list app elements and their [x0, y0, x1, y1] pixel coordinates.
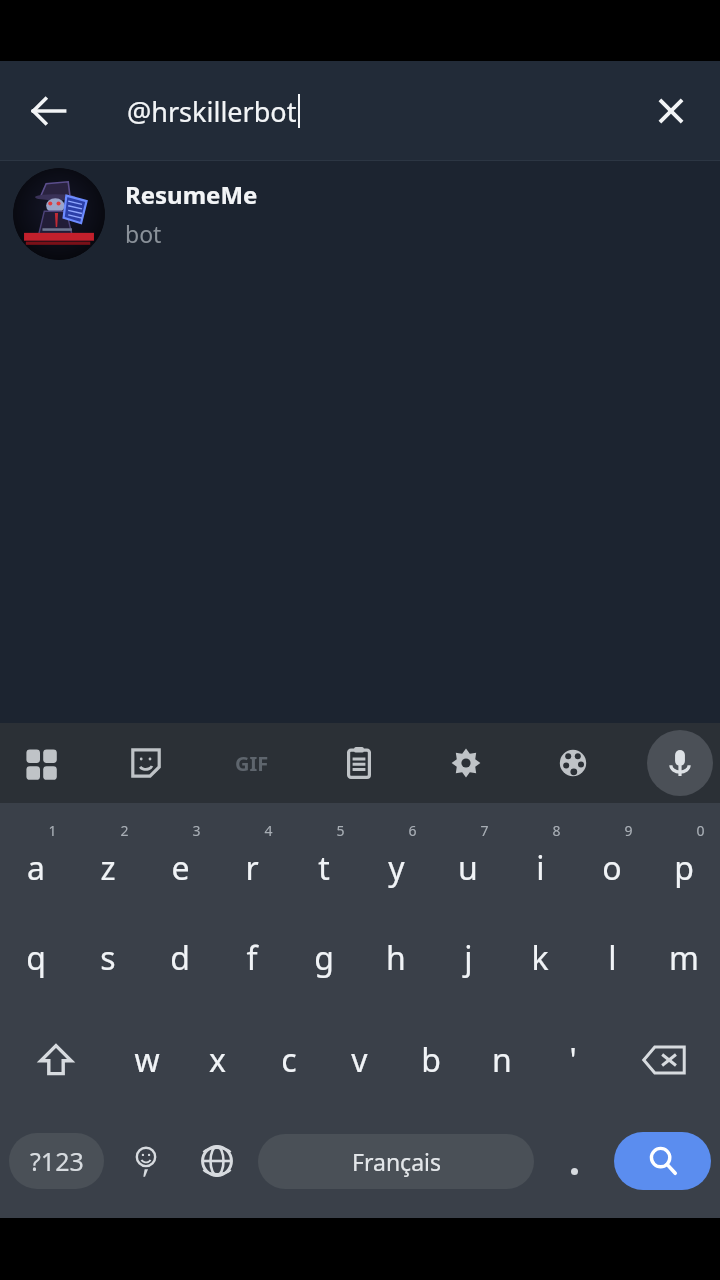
staticText: 0: [696, 821, 705, 840]
staticText: bot: [125, 218, 162, 249]
button[interactable]: Stickers: [113, 730, 179, 796]
button[interactable]: ?123: [9, 1133, 104, 1189]
staticText: z: [100, 846, 116, 890]
staticText: t: [318, 846, 330, 890]
button[interactable]: 9: [576, 808, 648, 908]
button[interactable]: @hrskillerbot: [127, 76, 610, 146]
staticText: 5: [336, 821, 345, 840]
staticText: m: [669, 936, 699, 980]
button[interactable]: q: [0, 908, 72, 1008]
button[interactable]: f: [216, 908, 288, 1008]
button[interactable]: l: [576, 908, 648, 1008]
button[interactable]: 3: [144, 808, 216, 908]
staticText: ResumeMe: [125, 178, 258, 211]
staticText: y: [388, 846, 405, 890]
button[interactable]: 8: [504, 808, 576, 908]
staticText: q: [26, 936, 46, 980]
staticText: ?123: [30, 1144, 84, 1178]
button[interactable]: Settings: [433, 730, 499, 796]
button[interactable]: Français: [258, 1134, 534, 1189]
button[interactable]: Voice input: [647, 730, 713, 796]
staticText: s: [100, 936, 116, 980]
staticText: b: [421, 1038, 441, 1082]
staticText: 6: [408, 821, 417, 840]
button[interactable]: 1: [0, 808, 72, 908]
staticText: 1: [48, 821, 57, 840]
button[interactable]: ': [537, 1010, 608, 1110]
staticText: i: [536, 846, 545, 890]
button[interactable]: s: [72, 908, 144, 1008]
staticText: d: [170, 936, 190, 980]
staticText: r: [245, 846, 259, 890]
staticText: 3: [192, 821, 201, 840]
staticText: n: [492, 1038, 512, 1082]
staticText: f: [246, 936, 258, 980]
staticText: GIF: [235, 750, 269, 777]
staticText: a: [27, 846, 45, 890]
button[interactable]: j: [432, 908, 504, 1008]
button[interactable]: d: [144, 908, 216, 1008]
button[interactable]: b: [395, 1010, 466, 1110]
staticText: Français: [352, 1146, 441, 1177]
button[interactable]: Back: [14, 76, 84, 146]
button[interactable]: Change language: [182, 1121, 252, 1201]
button[interactable]: Clipboard: [326, 730, 392, 796]
button[interactable]: n: [466, 1010, 537, 1110]
button[interactable]: c: [253, 1010, 324, 1110]
button[interactable]: 4: [216, 808, 288, 908]
staticText: k: [531, 936, 549, 980]
staticText: 2: [120, 821, 129, 840]
staticText: u: [458, 846, 478, 890]
button[interactable]: Shift: [0, 1010, 112, 1110]
button[interactable]: Theme: [540, 730, 606, 796]
button[interactable]: Period: [540, 1121, 608, 1201]
staticText: g: [314, 936, 334, 980]
button[interactable]: k: [504, 908, 576, 1008]
staticText: c: [281, 1038, 297, 1082]
button[interactable]: 6: [360, 808, 432, 908]
button[interactable]: Apps: [7, 730, 73, 796]
staticText: 9: [624, 821, 633, 840]
staticText: 8: [552, 821, 561, 840]
staticText: l: [608, 936, 617, 980]
staticText: e: [171, 846, 190, 890]
staticText: ': [569, 1038, 577, 1082]
button[interactable]: Emoji: [112, 1121, 180, 1201]
staticText: j: [464, 936, 473, 980]
button[interactable]: x: [182, 1010, 253, 1110]
button[interactable]: h: [360, 908, 432, 1008]
button[interactable]: m: [648, 908, 720, 1008]
staticText: p: [674, 846, 694, 890]
staticText: @hrskillerbot: [127, 93, 297, 130]
button[interactable]: g: [288, 908, 360, 1008]
staticText: x: [209, 1038, 226, 1082]
staticText: 4: [264, 821, 273, 840]
staticText: 7: [480, 821, 489, 840]
button[interactable]: 5: [288, 808, 360, 908]
staticText: o: [602, 846, 622, 890]
button[interactable]: 0: [648, 808, 720, 908]
button[interactable]: 7: [432, 808, 504, 908]
button[interactable]: ResumeMe: [0, 161, 720, 266]
staticText: v: [351, 1038, 368, 1082]
staticText: w: [134, 1038, 160, 1082]
button[interactable]: v: [324, 1010, 395, 1110]
button[interactable]: w: [112, 1010, 182, 1110]
button[interactable]: GIF: [219, 730, 285, 796]
button[interactable]: 2: [72, 808, 144, 908]
staticText: h: [386, 936, 406, 980]
button[interactable]: Search: [614, 1132, 711, 1190]
button[interactable]: Backspace: [608, 1010, 720, 1110]
button[interactable]: Clear: [636, 76, 706, 146]
